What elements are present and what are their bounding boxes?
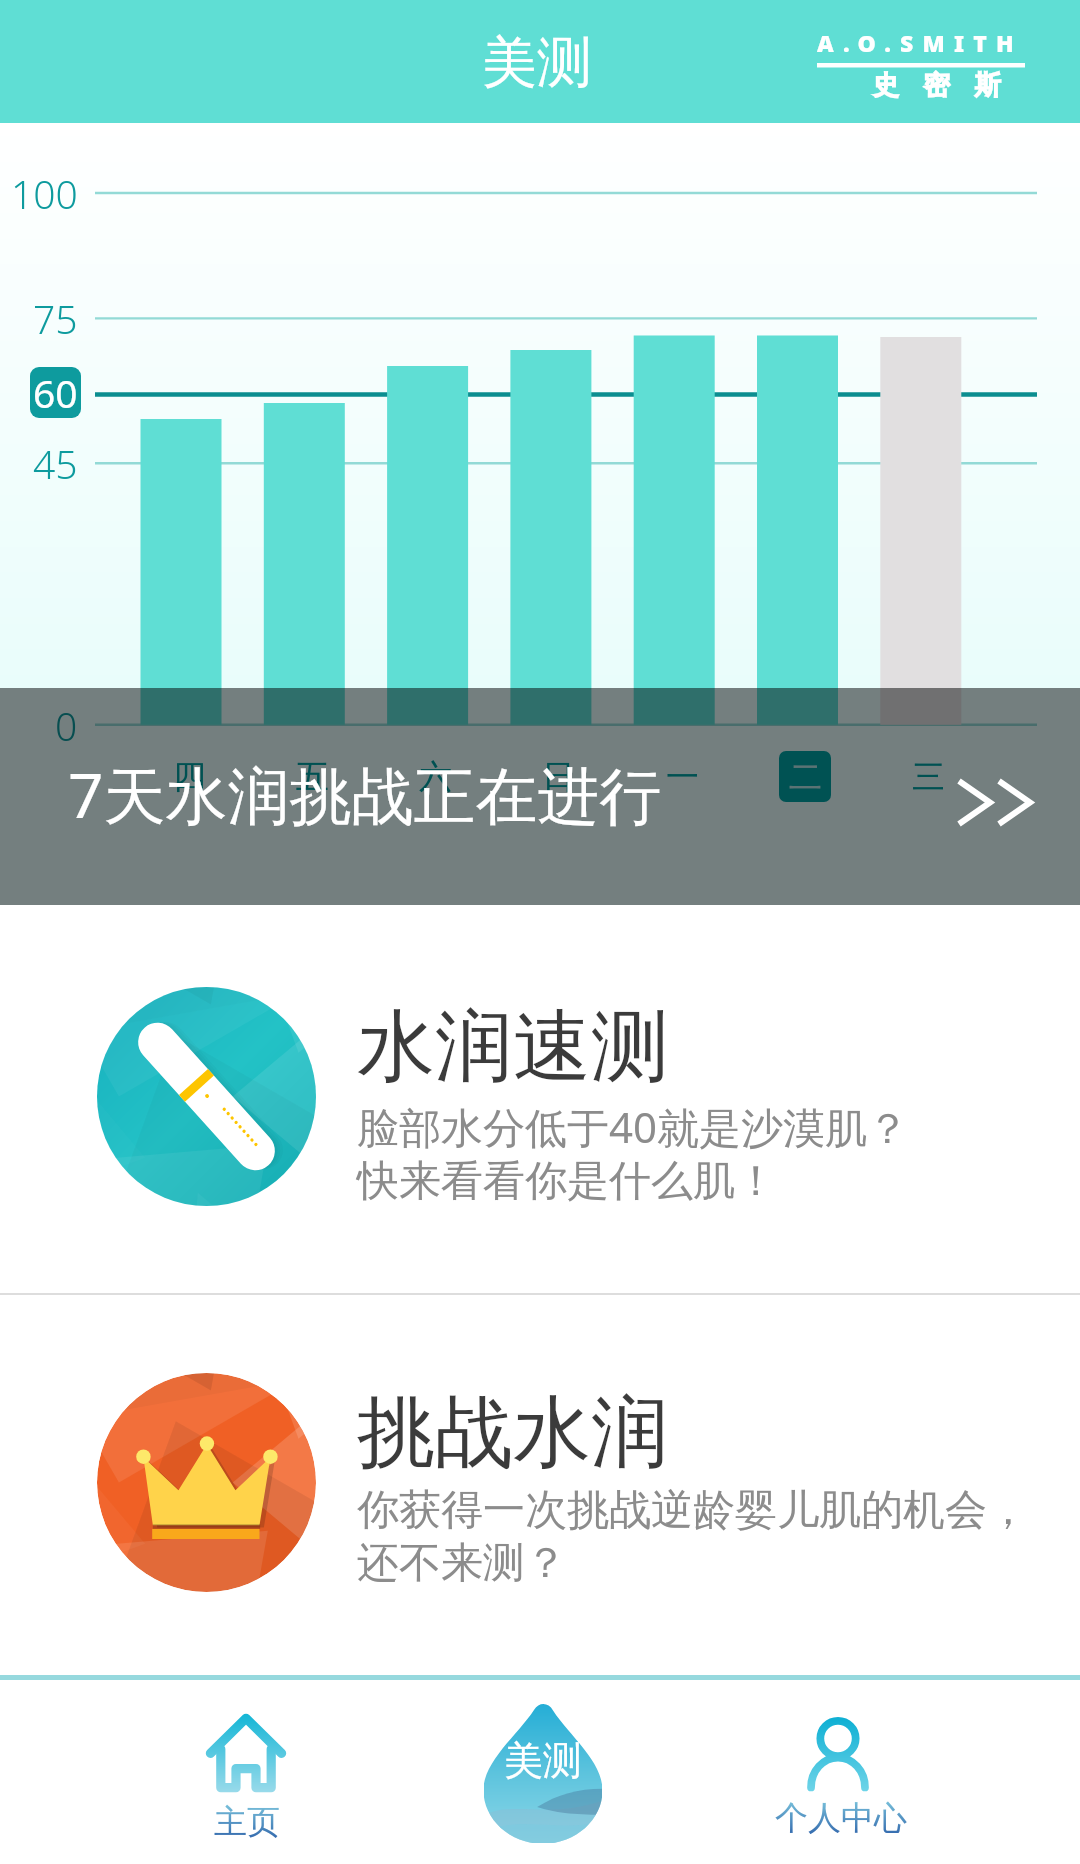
other: More [950, 770, 1042, 830]
staticText: 7天水润挑战正在进行 [68, 752, 662, 837]
staticText: 100 [11, 167, 78, 220]
staticText: 快来看看你是什么肌！ [357, 1155, 777, 1208]
other: Home [206, 1714, 286, 1792]
staticText: 挑战水润 [357, 1384, 669, 1482]
staticText: 美测 [482, 28, 592, 97]
staticText: 四 [173, 756, 206, 798]
staticText: 六 [419, 756, 452, 798]
staticText: 脸部水分低于40就是沙漠肌？ [357, 1098, 910, 1155]
staticText: 一 [666, 756, 699, 798]
button[interactable]: 7天水润挑战正在进行 [0, 688, 1080, 905]
staticText: 史密斯 [860, 69, 1013, 102]
staticText: 还不来测？ [357, 1537, 567, 1590]
button[interactable]: Profile [758, 1690, 918, 1858]
staticText: 45 [33, 437, 78, 490]
other: A.O.Smith [810, 28, 1030, 98]
staticText: 二 [789, 756, 822, 798]
other: Profile [807, 1719, 869, 1791]
staticText: 日 [542, 756, 575, 798]
staticText: A.O.SMITH [817, 27, 1023, 58]
staticText: 主页 [214, 1801, 280, 1843]
staticText: 个人中心 [775, 1797, 907, 1839]
staticText: 75 [33, 292, 78, 345]
button[interactable]: 美测 [462, 1690, 622, 1858]
button[interactable]: 水润速测 [0, 902, 1080, 1290]
staticText: 60 [33, 367, 78, 417]
staticText: 你获得一次挑战逆龄婴儿肌的机会， [357, 1484, 1029, 1537]
staticText: 五 [296, 756, 329, 798]
button[interactable]: 挑战水润 [0, 1292, 1080, 1672]
staticText: 三 [912, 756, 945, 798]
button[interactable]: Home [166, 1690, 326, 1858]
staticText: 水润速测 [357, 998, 669, 1096]
staticText: 美测 [504, 1736, 582, 1785]
staticText: 0 [55, 699, 78, 752]
